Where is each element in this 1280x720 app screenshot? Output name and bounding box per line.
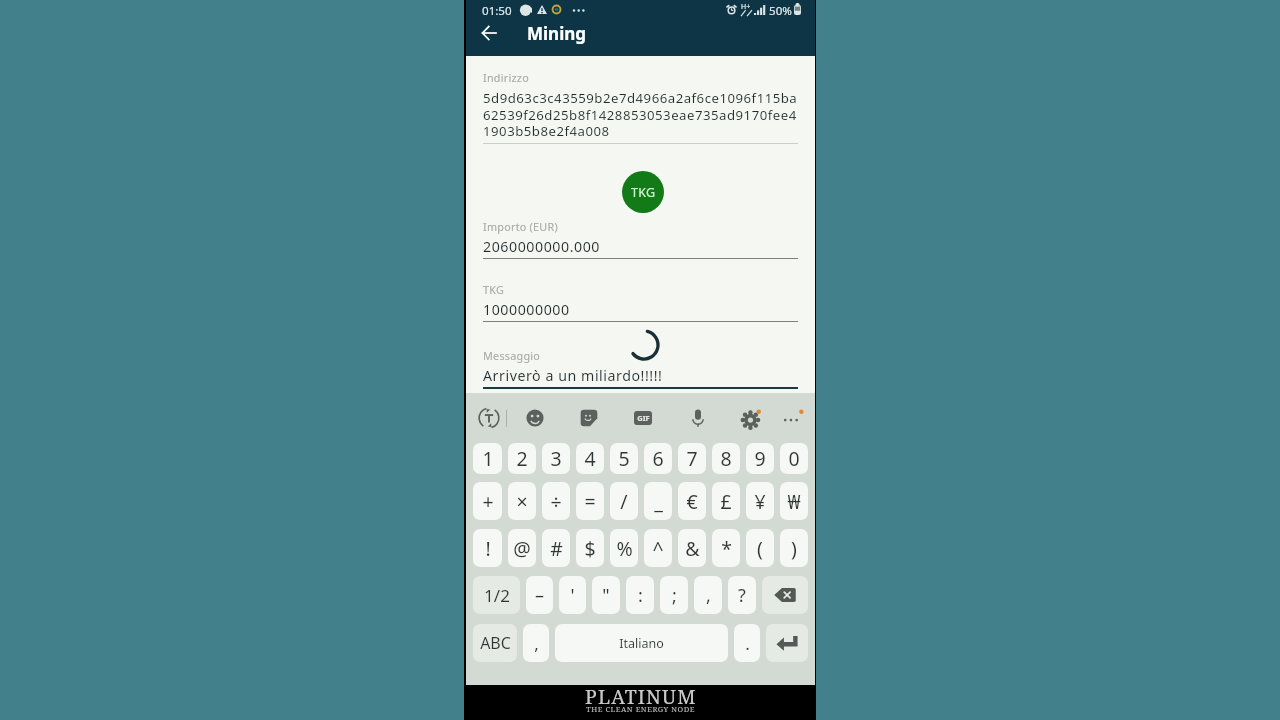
button[interactable]: 6 (644, 443, 672, 474)
button[interactable]: ! (473, 529, 502, 567)
button[interactable]: Italiano (555, 624, 728, 662)
staticText: % (616, 535, 633, 562)
button[interactable]: . (734, 624, 760, 662)
button[interactable]: Enter (766, 624, 808, 662)
button[interactable]: ) (780, 529, 808, 567)
button[interactable]: Translate (476, 405, 502, 431)
button[interactable]: 8 (712, 443, 740, 474)
staticText: × (516, 488, 528, 515)
button[interactable]: = (576, 482, 604, 520)
staticText: Arriverò a un miliardo!!!!! (483, 366, 663, 385)
button[interactable]: ; (660, 576, 688, 614)
staticText: ( (757, 535, 763, 562)
staticText: 3 (550, 445, 562, 472)
button[interactable]: % (610, 529, 638, 567)
button[interactable]: 3 (542, 443, 570, 474)
button[interactable]: 7 (678, 443, 706, 474)
staticText: ) (791, 535, 797, 562)
button[interactable]: _ (644, 482, 672, 520)
button[interactable]: – (526, 576, 553, 614)
staticText: Importo (EUR) (483, 219, 558, 234)
button[interactable]: , (523, 624, 549, 662)
button[interactable]: Back (473, 17, 505, 49)
staticText: THE CLEAN ENERGY NODE (586, 704, 695, 714)
staticText: 2060000000.000 (483, 237, 601, 256)
button[interactable]: 1 (473, 443, 502, 474)
staticText: ? (738, 583, 746, 608)
staticText: GIF (637, 413, 650, 423)
staticText: & (685, 535, 700, 562)
button[interactable]: * (712, 529, 740, 567)
staticText: 7 (686, 445, 698, 472)
button[interactable]: Settings (739, 405, 765, 431)
button[interactable]: ' (559, 576, 586, 614)
staticText: 5 (618, 445, 630, 472)
button[interactable]: @ (508, 529, 536, 567)
button[interactable]: ÷ (542, 482, 570, 520)
button[interactable]: ₩ (780, 482, 808, 520)
staticText: # (550, 535, 563, 562)
button[interactable]: × (508, 482, 536, 520)
button[interactable]: , (694, 576, 722, 614)
button[interactable]: 5 (610, 443, 638, 474)
staticText: _ (654, 488, 663, 515)
staticText: @ (513, 535, 531, 562)
staticText: £ (720, 488, 732, 515)
button[interactable]: + (473, 482, 502, 520)
button[interactable]: Stickers (576, 405, 602, 431)
staticText: ¥ (754, 488, 766, 515)
button[interactable]: More options (779, 405, 805, 431)
button[interactable]: TKG (622, 171, 664, 213)
button[interactable]: GIF (630, 405, 656, 431)
staticText: TKG (483, 282, 505, 297)
button[interactable]: ABC (473, 624, 517, 662)
staticText: 2 (516, 445, 528, 472)
button[interactable]: € (678, 482, 706, 520)
staticText: ^ (652, 535, 664, 562)
button[interactable]: ¥ (746, 482, 774, 520)
staticText: . (745, 632, 750, 655)
staticText: ! (485, 535, 491, 562)
staticText: ₩ (787, 488, 801, 515)
staticText: € (686, 488, 698, 515)
button[interactable]: 1/2 (473, 576, 520, 614)
staticText: + (482, 488, 494, 515)
staticText: " (602, 583, 610, 608)
button[interactable]: " (592, 576, 620, 614)
staticText: $ (584, 535, 596, 562)
button[interactable]: Emoji (522, 405, 548, 431)
button[interactable]: £ (712, 482, 740, 520)
button[interactable]: Backspace (762, 576, 808, 614)
button[interactable]: 9 (746, 443, 774, 474)
staticText: ÷ (550, 488, 562, 515)
staticText: 1/2 (484, 584, 510, 607)
staticText: ' (570, 583, 575, 608)
staticText: , (706, 583, 711, 608)
staticText: 0 (788, 445, 800, 472)
staticText: ABC (480, 632, 511, 654)
button[interactable]: ? (728, 576, 756, 614)
staticText: PLATINUM (585, 683, 697, 710)
button[interactable]: : (626, 576, 654, 614)
staticText: ; (672, 583, 677, 608)
button[interactable]: ^ (644, 529, 672, 567)
button[interactable]: ( (746, 529, 774, 567)
button[interactable]: # (542, 529, 570, 567)
staticText: 01:50 (482, 3, 512, 19)
staticText: 4 (584, 445, 596, 472)
button[interactable]: 0 (780, 443, 808, 474)
button[interactable]: & (678, 529, 706, 567)
staticText: – (535, 583, 544, 608)
staticText: 50% (769, 3, 792, 19)
button[interactable]: Voice input (685, 405, 711, 431)
staticText: H+ (741, 2, 751, 12)
button[interactable]: $ (576, 529, 604, 567)
staticText: : (638, 583, 643, 608)
button[interactable]: / (610, 482, 638, 520)
button[interactable]: 4 (576, 443, 604, 474)
staticText: * (721, 535, 732, 562)
staticText: Messaggio (483, 348, 541, 363)
staticText: 8 (720, 445, 732, 472)
staticText: 6 (652, 445, 664, 472)
button[interactable]: 2 (508, 443, 536, 474)
